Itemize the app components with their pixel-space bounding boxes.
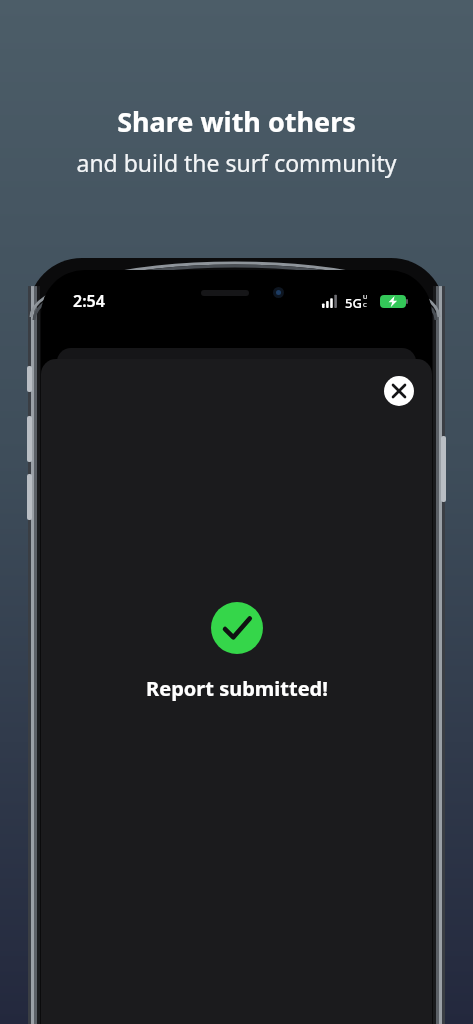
staticText: U xyxy=(363,293,368,301)
staticText: 2:54 xyxy=(73,290,105,312)
staticText: 5G xyxy=(345,294,362,308)
staticText: C xyxy=(363,301,367,307)
staticText: and build the surf community xyxy=(76,147,397,178)
staticText: Share with others xyxy=(117,103,356,140)
staticText: Report submitted! xyxy=(146,675,328,702)
button[interactable]: Close xyxy=(384,376,414,406)
